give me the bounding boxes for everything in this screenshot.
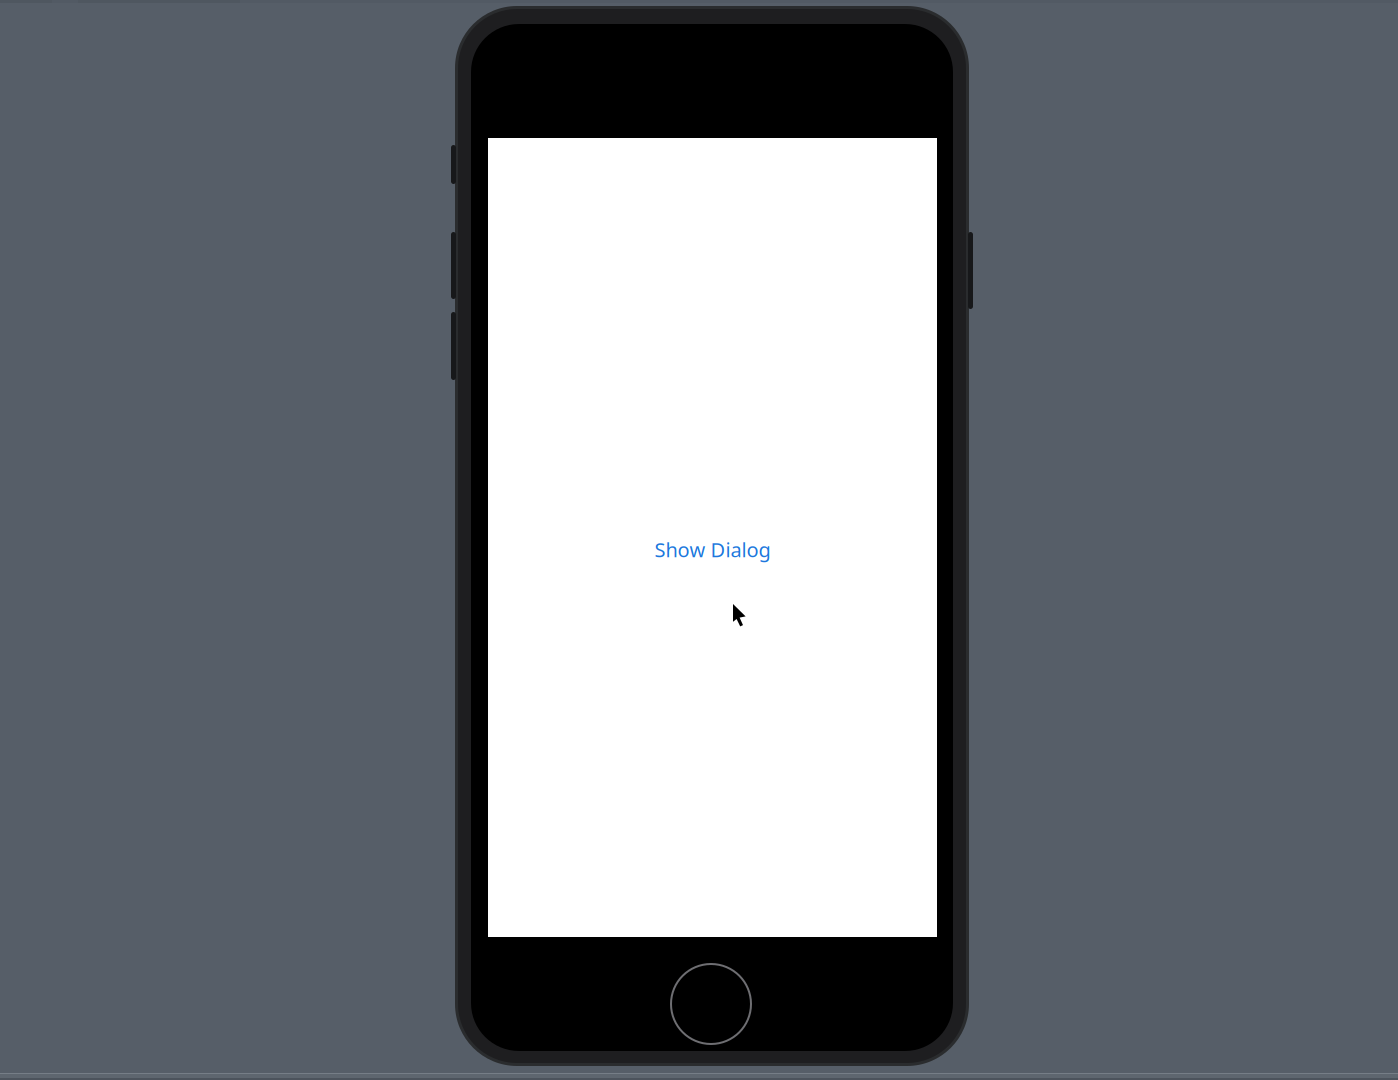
button[interactable]: Show Dialog bbox=[654, 536, 770, 563]
staticText: Show Dialog bbox=[654, 536, 770, 563]
